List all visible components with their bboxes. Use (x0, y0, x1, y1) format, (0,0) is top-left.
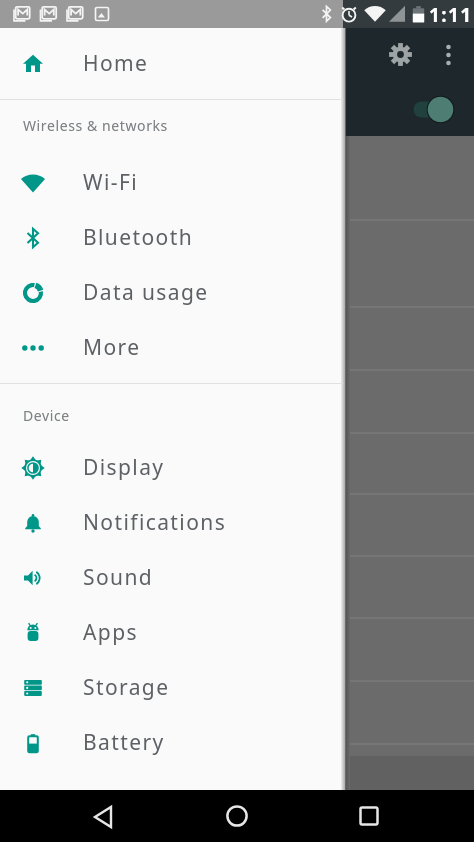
button[interactable]: Display (0, 440, 343, 495)
staticText: Wi-Fi (83, 168, 139, 197)
button[interactable]: Data usage (0, 265, 343, 320)
button[interactable]: Sound (0, 550, 343, 605)
staticText: Data usage (83, 278, 209, 307)
staticText: Battery (83, 728, 165, 757)
staticText: Wireless & networks (23, 116, 168, 135)
button[interactable]: Storage (0, 660, 343, 715)
button[interactable] (80, 792, 128, 840)
staticText: Display (83, 453, 165, 482)
staticText: Apps (83, 618, 138, 647)
button[interactable] (213, 792, 261, 840)
button[interactable]: Battery (0, 715, 343, 770)
button[interactable]: Bluetooth (0, 210, 343, 265)
staticText: 1:11 (429, 2, 473, 28)
staticText: Sound (83, 563, 154, 592)
button[interactable] (345, 792, 393, 840)
button[interactable]: Home (0, 36, 343, 91)
staticText: Storage (83, 673, 170, 702)
button[interactable]: Apps (0, 605, 343, 660)
button[interactable]: Notifications (0, 495, 343, 550)
button[interactable]: Wi-Fi (0, 155, 343, 210)
staticText: Home (83, 49, 149, 78)
staticText: Bluetooth (83, 223, 194, 252)
staticText: Device (23, 406, 70, 425)
staticText: Notifications (83, 508, 227, 537)
staticText: More (83, 333, 141, 362)
button[interactable]: More (0, 320, 343, 375)
